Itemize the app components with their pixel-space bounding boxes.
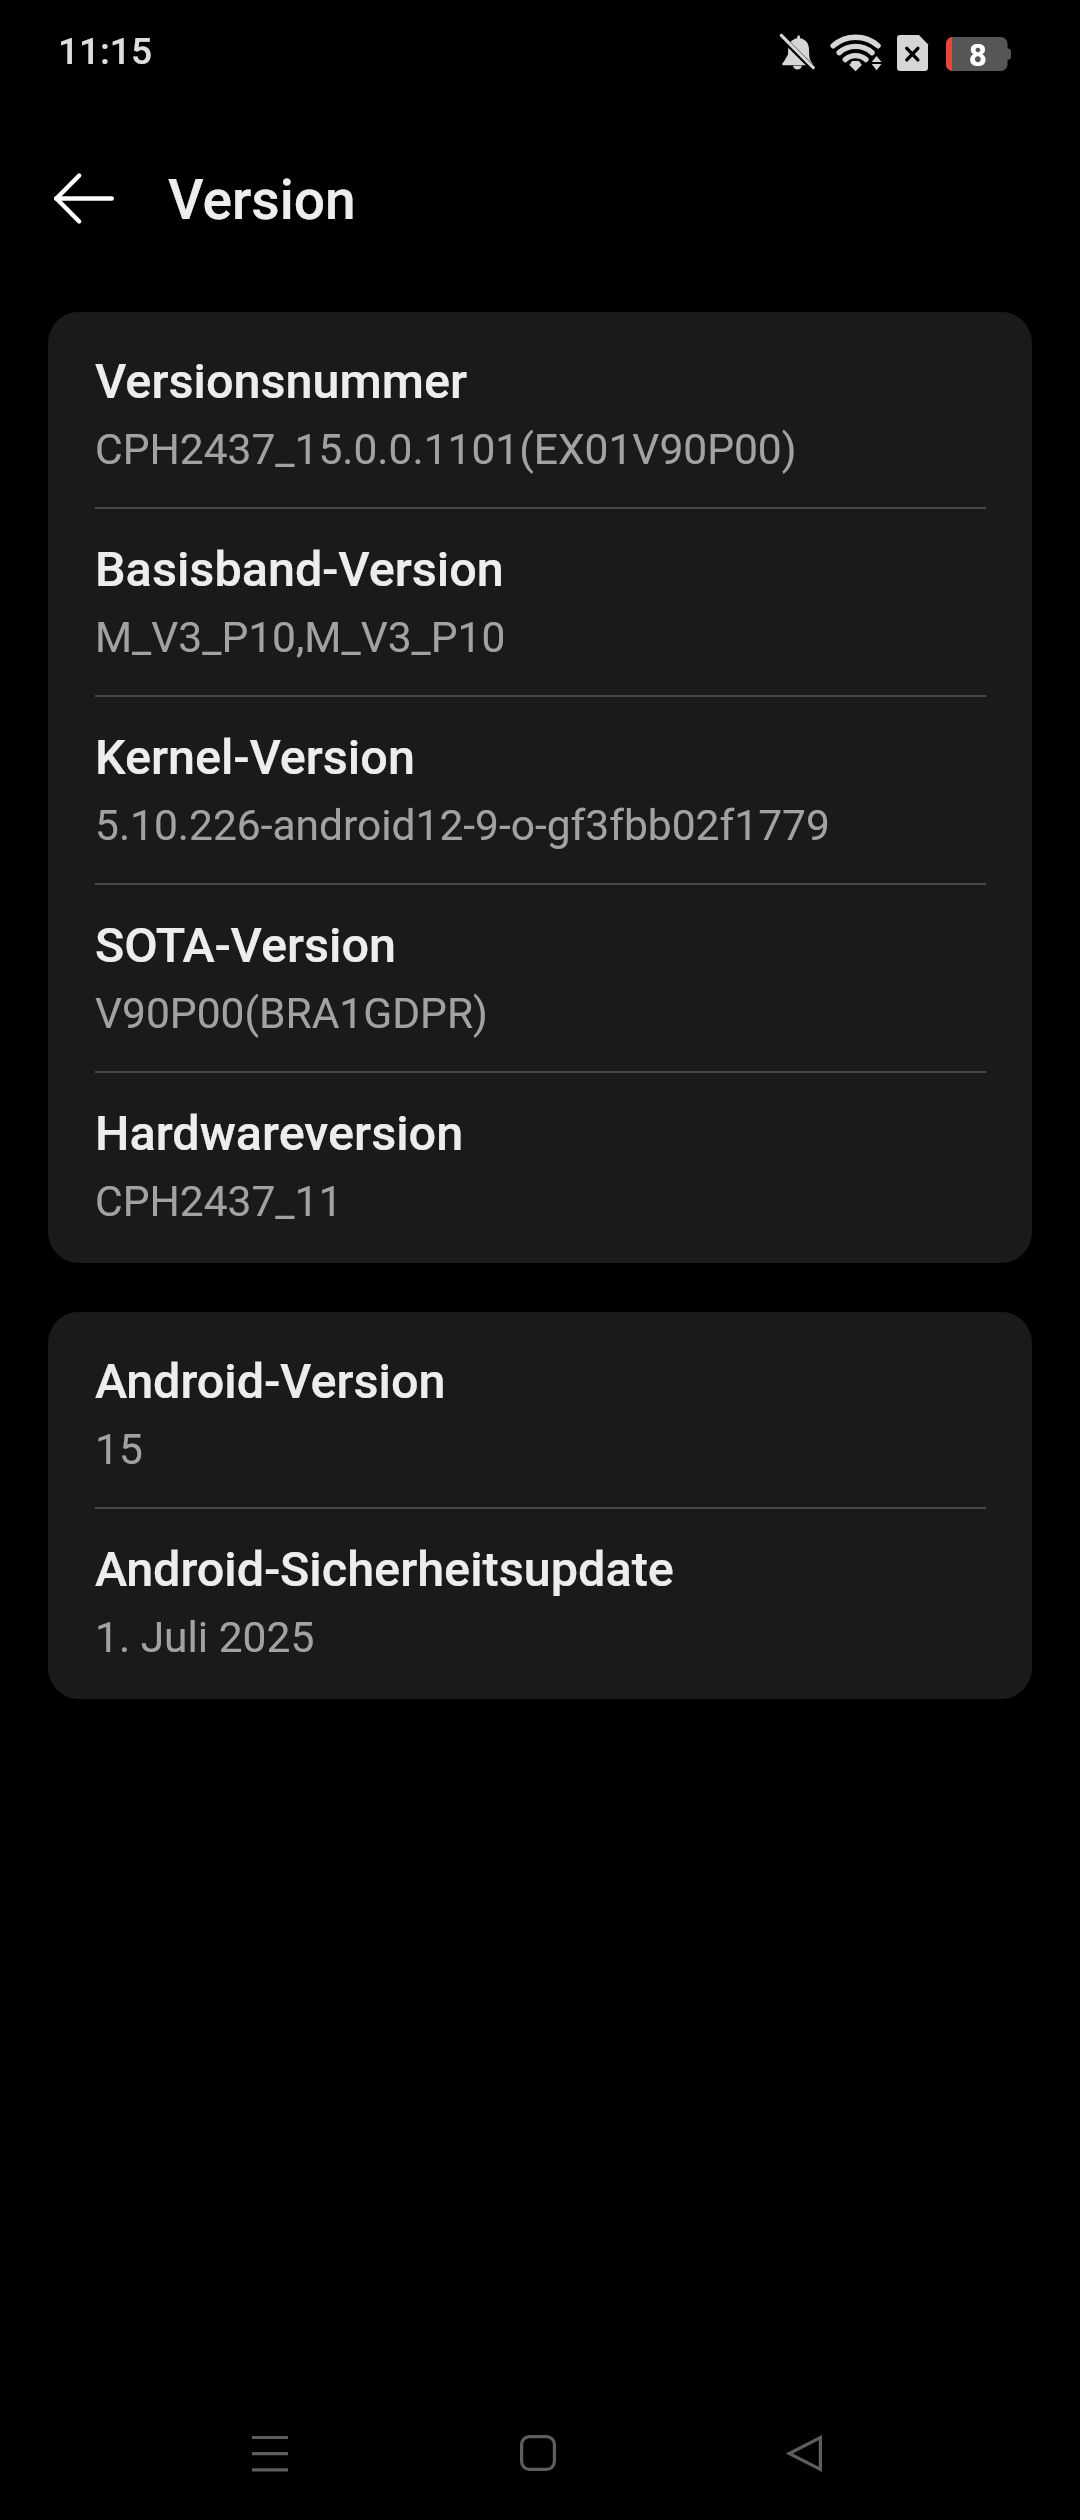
- button[interactable]: Hardwareversion: [48, 1073, 1032, 1259]
- button[interactable]: Android-Version: [48, 1321, 1032, 1507]
- button[interactable]: SOTA-Version: [48, 885, 1032, 1071]
- button[interactable]: Zurück: [750, 2399, 858, 2507]
- staticText: Basisband-Version: [95, 541, 504, 598]
- staticText: 15: [95, 1425, 143, 1475]
- staticText: Android-Sicherheitsupdate: [95, 1541, 674, 1598]
- staticText: CPH2437_11: [95, 1177, 343, 1227]
- button[interactable]: Startbildschirm: [484, 2399, 592, 2507]
- staticText: Version: [168, 168, 356, 232]
- staticText: 5.10.226-android12-9-o-gf3fbb02f1779: [95, 801, 830, 851]
- staticText: Hardwareversion: [95, 1105, 464, 1162]
- button[interactable]: Basisband-Version: [48, 509, 1032, 695]
- staticText: SOTA-Version: [95, 917, 397, 974]
- staticText: Android-Version: [95, 1353, 446, 1410]
- staticText: 1. Juli 2025: [95, 1613, 315, 1663]
- staticText: CPH2437_15.0.0.1101(EX01V90P00): [95, 425, 797, 475]
- staticText: V90P00(BRA1GDPR): [95, 989, 488, 1039]
- button[interactable]: Zurück: [30, 144, 138, 252]
- staticText: M_V3_P10,M_V3_P10: [95, 613, 506, 663]
- staticText: Versionsnummer: [95, 353, 467, 410]
- staticText: 11:15: [58, 30, 152, 73]
- button[interactable]: Letzte Apps: [216, 2399, 324, 2507]
- staticText: Kernel-Version: [95, 729, 415, 786]
- button[interactable]: Android-Sicherheitsupdate: [48, 1509, 1032, 1695]
- button[interactable]: Kernel-Version: [48, 697, 1032, 883]
- staticText: 8: [969, 37, 987, 71]
- button[interactable]: Versionsnummer: [48, 321, 1032, 507]
